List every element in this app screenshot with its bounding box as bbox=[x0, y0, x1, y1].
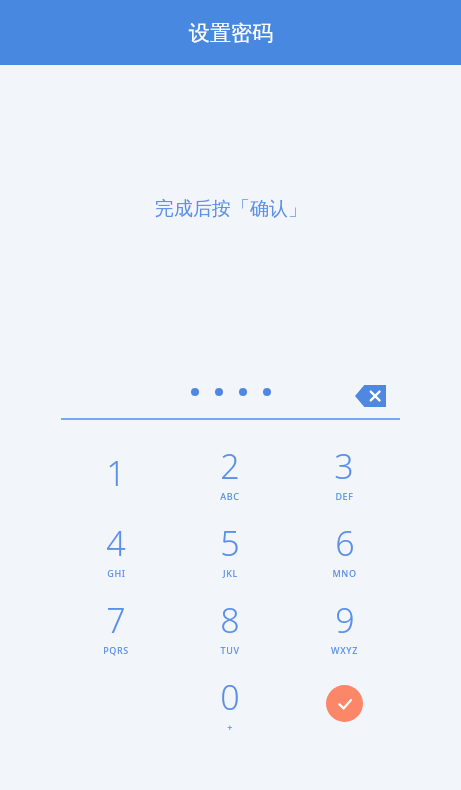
staticText: TUV bbox=[220, 644, 240, 656]
staticText: 2 bbox=[220, 443, 240, 489]
button[interactable]: 5 bbox=[173, 511, 287, 588]
button[interactable]: 2 bbox=[173, 434, 287, 511]
button[interactable]: Backspace bbox=[352, 382, 388, 410]
staticText: 1 bbox=[106, 450, 126, 496]
button[interactable]: 4 bbox=[59, 511, 173, 588]
staticText: JKL bbox=[223, 567, 238, 579]
staticText: 设置密码 bbox=[189, 20, 273, 46]
staticText: + bbox=[227, 721, 233, 733]
button[interactable]: 7 bbox=[59, 588, 173, 665]
staticText: ABC bbox=[220, 490, 240, 502]
staticText: 7 bbox=[106, 597, 126, 643]
staticText: MNO bbox=[332, 567, 357, 579]
button[interactable]: 6 bbox=[287, 511, 401, 588]
button[interactable]: 3 bbox=[287, 434, 401, 511]
staticText: 0 bbox=[220, 674, 240, 720]
button[interactable]: 9 bbox=[287, 588, 401, 665]
staticText: 9 bbox=[335, 597, 355, 643]
staticText: 5 bbox=[220, 520, 240, 566]
staticText: 3 bbox=[334, 443, 354, 489]
staticText: GHI bbox=[107, 567, 126, 579]
button[interactable]: Confirm bbox=[326, 685, 363, 722]
button[interactable]: 0 bbox=[173, 665, 287, 742]
button[interactable]: 8 bbox=[173, 588, 287, 665]
staticText: 6 bbox=[335, 520, 355, 566]
staticText: 完成后按「确认」 bbox=[155, 197, 307, 221]
staticText: 8 bbox=[220, 597, 240, 643]
staticText: WXYZ bbox=[331, 644, 358, 656]
staticText: DEF bbox=[335, 490, 354, 502]
staticText: PQRS bbox=[103, 644, 129, 656]
button[interactable]: 1 bbox=[59, 434, 173, 511]
staticText: 4 bbox=[106, 520, 126, 566]
